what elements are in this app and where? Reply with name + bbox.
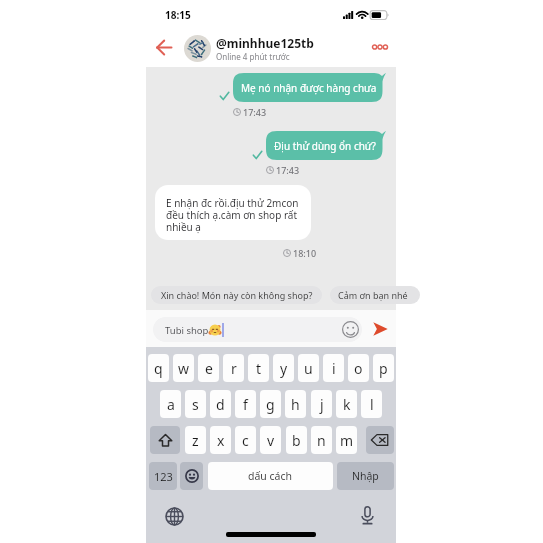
button[interactable]: Send bbox=[372, 321, 388, 337]
button[interactable]: Cảm ơn bạn nhé bbox=[330, 286, 420, 304]
staticText: r bbox=[231, 359, 237, 378]
button[interactable]: l bbox=[361, 390, 382, 418]
staticText: Địu thử dùng ổn chứ? bbox=[274, 139, 376, 153]
button[interactable]: Change keyboard bbox=[163, 505, 185, 527]
staticText: a bbox=[167, 395, 175, 414]
button[interactable]: u bbox=[298, 354, 319, 382]
button[interactable]: Back bbox=[149, 33, 178, 62]
staticText: h bbox=[291, 395, 300, 414]
staticText: Cảm ơn bạn nhé bbox=[338, 289, 408, 301]
button[interactable]: h bbox=[285, 390, 306, 418]
button[interactable]: k bbox=[336, 390, 357, 418]
button[interactable]: n bbox=[311, 426, 332, 454]
button[interactable]: Emoji bbox=[342, 321, 359, 338]
staticText: Nhập bbox=[352, 469, 379, 483]
button[interactable]: Nhập bbox=[337, 462, 394, 490]
button[interactable]: t bbox=[248, 354, 269, 382]
button[interactable]: Tubi shop bbox=[153, 317, 362, 342]
button[interactable]: a bbox=[160, 390, 181, 418]
staticText: w bbox=[178, 359, 190, 378]
button[interactable]: s bbox=[185, 390, 206, 418]
staticText: l bbox=[370, 395, 374, 414]
staticText: f bbox=[243, 395, 248, 414]
button[interactable]: o bbox=[348, 354, 369, 382]
staticText: j bbox=[320, 395, 324, 414]
staticText: g bbox=[266, 395, 275, 414]
staticText: p bbox=[379, 359, 388, 378]
staticText: i bbox=[332, 359, 336, 378]
button[interactable]: m bbox=[336, 426, 357, 454]
button[interactable]: dấu cách bbox=[208, 462, 333, 490]
staticText: E nhận đc rồi.địu thử 2mcon đều thích ạ.… bbox=[166, 196, 303, 234]
button[interactable]: b bbox=[286, 426, 307, 454]
staticText: b bbox=[292, 431, 301, 450]
button[interactable]: More options bbox=[367, 34, 393, 60]
staticText: 17:43 bbox=[276, 164, 300, 176]
button[interactable]: Dictation bbox=[356, 504, 378, 526]
button[interactable]: y bbox=[273, 354, 294, 382]
button[interactable]: Xin chào! Món này còn không shop? bbox=[151, 286, 322, 304]
staticText: 17:43 bbox=[243, 106, 267, 118]
staticText: d bbox=[216, 395, 225, 414]
button[interactable]: c bbox=[235, 426, 256, 454]
button[interactable]: g bbox=[260, 390, 281, 418]
staticText: 18:15 bbox=[165, 8, 191, 22]
staticText: m bbox=[340, 431, 354, 450]
button[interactable]: v bbox=[260, 426, 281, 454]
staticText: c bbox=[242, 431, 249, 450]
staticText: Xin chào! Món này còn không shop? bbox=[161, 289, 313, 301]
button[interactable]: j bbox=[311, 390, 332, 418]
button[interactable]: e bbox=[198, 354, 219, 382]
button[interactable]: p bbox=[373, 354, 394, 382]
button[interactable]: E nhận đc rồi.địu thử 2mcon đều thích ạ.… bbox=[155, 185, 311, 240]
staticText: o bbox=[354, 359, 363, 378]
button[interactable]: Backspace bbox=[366, 426, 394, 454]
button[interactable]: f bbox=[235, 390, 256, 418]
staticText: Online 4 phút trước bbox=[216, 51, 290, 62]
button[interactable]: Profile photo bbox=[184, 35, 211, 62]
staticText: x bbox=[217, 431, 225, 450]
staticText: k bbox=[343, 395, 351, 414]
staticText: 123 bbox=[154, 469, 173, 484]
button[interactable]: Emoji keyboard bbox=[180, 462, 203, 490]
staticText: u bbox=[304, 359, 313, 378]
button[interactable]: x bbox=[210, 426, 231, 454]
button[interactable]: w bbox=[173, 354, 194, 382]
staticText: n bbox=[317, 431, 326, 450]
button[interactable]: Shift bbox=[150, 426, 180, 454]
staticText: dấu cách bbox=[248, 469, 293, 483]
staticText: s bbox=[192, 395, 199, 414]
staticText: v bbox=[267, 431, 275, 450]
staticText: 18:10 bbox=[293, 247, 317, 259]
button[interactable]: i bbox=[323, 354, 344, 382]
staticText: Tubi shop bbox=[165, 324, 209, 337]
staticText: @minhhue125tb bbox=[216, 35, 314, 51]
button[interactable]: z bbox=[185, 426, 206, 454]
staticText: t bbox=[256, 359, 262, 378]
button[interactable]: Mẹ nó nhận được hàng chưa bbox=[233, 73, 386, 102]
staticText: Mẹ nó nhận được hàng chưa bbox=[241, 81, 377, 95]
button[interactable]: Địu thử dùng ổn chứ? bbox=[266, 131, 386, 160]
staticText: z bbox=[192, 431, 199, 450]
staticText: e bbox=[205, 359, 213, 378]
staticText: q bbox=[154, 359, 163, 378]
staticText: y bbox=[280, 359, 288, 378]
button[interactable]: d bbox=[210, 390, 231, 418]
button[interactable]: q bbox=[148, 354, 169, 382]
button[interactable]: r bbox=[223, 354, 244, 382]
button[interactable]: 123 bbox=[149, 462, 177, 490]
